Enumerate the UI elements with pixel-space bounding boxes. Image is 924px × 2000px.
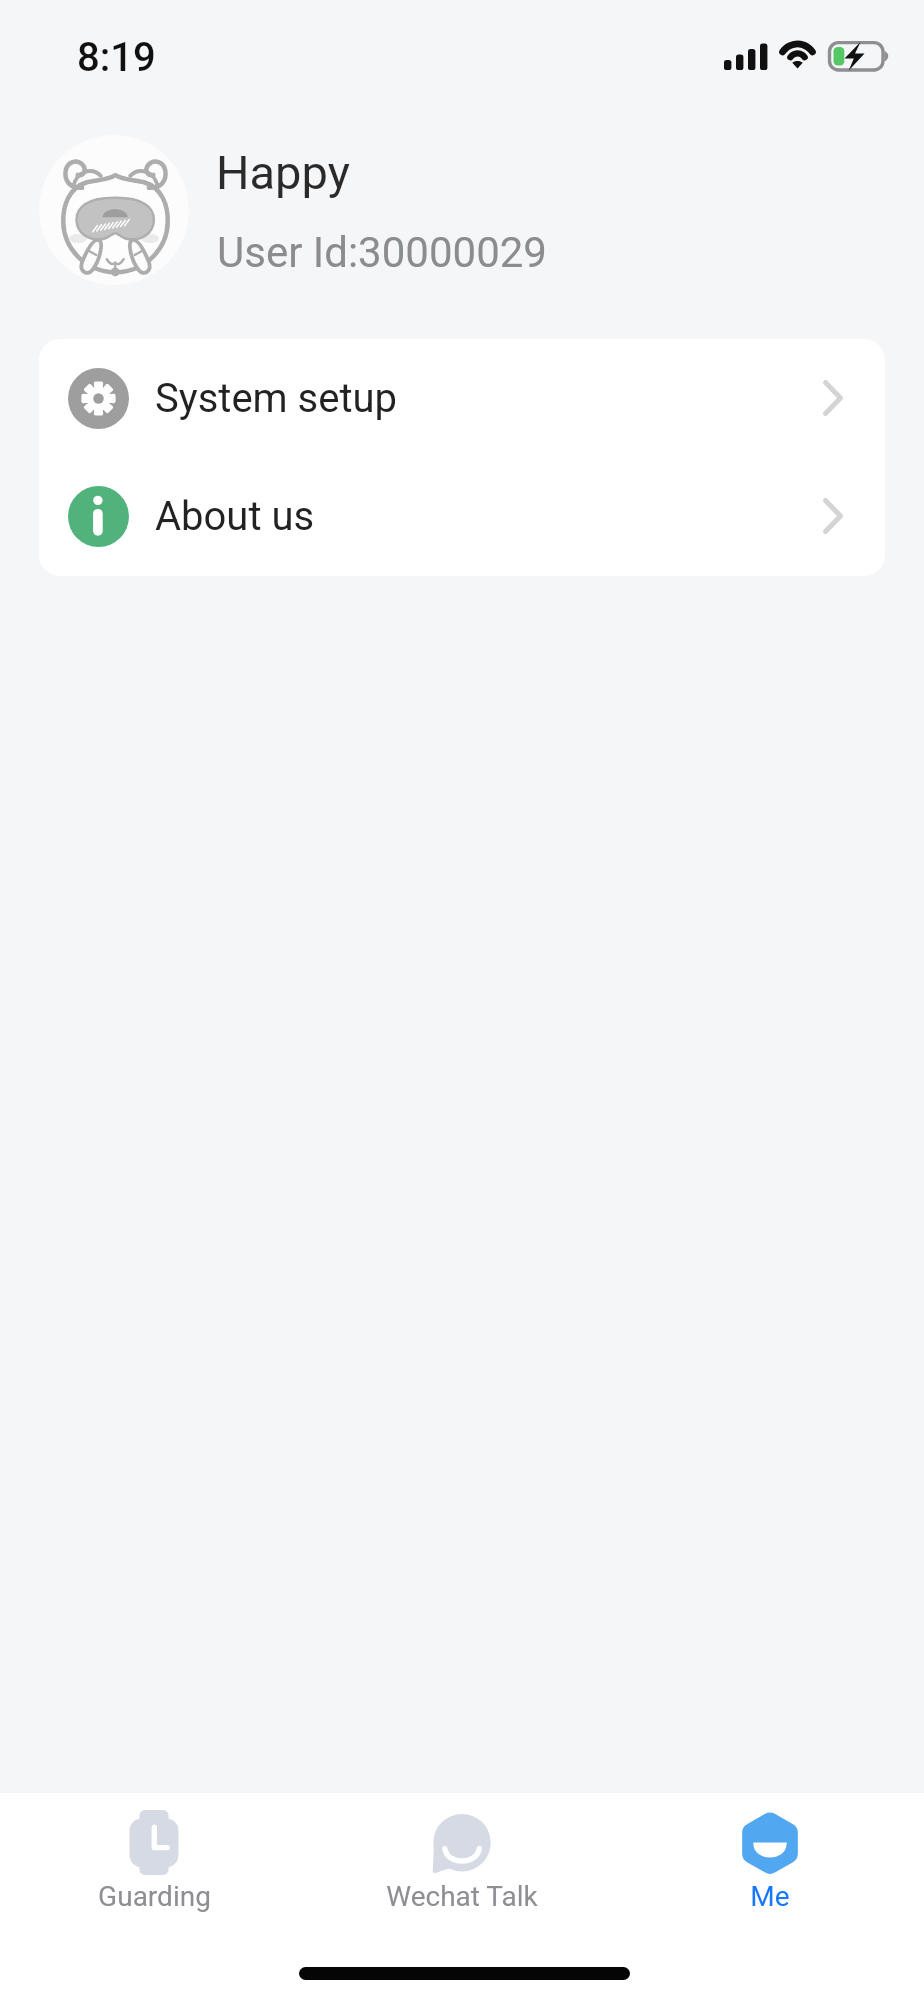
button[interactable]: Guarding bbox=[0, 1793, 308, 1923]
staticText: Guarding bbox=[98, 1880, 211, 1913]
staticText: Happy bbox=[216, 145, 350, 200]
staticText: Me bbox=[750, 1880, 790, 1913]
button[interactable]: Me bbox=[616, 1793, 924, 1923]
staticText: User Id:30000029 bbox=[217, 228, 547, 277]
staticText: Wechat Talk bbox=[386, 1880, 538, 1913]
button[interactable]: System setup bbox=[39, 339, 885, 457]
button[interactable]: Profile: Happy, User Id:30000029 bbox=[0, 124, 924, 298]
button[interactable]: About us bbox=[39, 457, 885, 575]
button[interactable]: Wechat Talk bbox=[308, 1793, 616, 1923]
staticText: 8:19 bbox=[77, 34, 156, 81]
staticText: About us bbox=[155, 493, 315, 540]
staticText: System setup bbox=[155, 375, 398, 422]
